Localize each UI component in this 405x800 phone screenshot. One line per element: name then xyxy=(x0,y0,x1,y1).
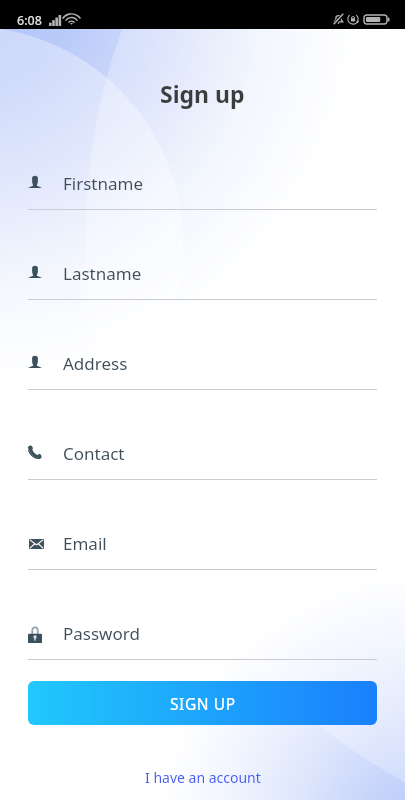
button[interactable]: Email xyxy=(28,524,377,570)
button[interactable]: Address xyxy=(28,344,377,390)
staticText: Firstname xyxy=(63,172,144,195)
staticText: Address xyxy=(63,352,128,375)
button[interactable]: Contact xyxy=(28,434,377,480)
button[interactable]: I have an account xyxy=(135,764,271,791)
button[interactable]: SIGN UP xyxy=(28,681,377,725)
staticText: Password xyxy=(63,622,140,645)
button[interactable]: Lastname xyxy=(28,254,377,300)
staticText: Lastname xyxy=(63,262,142,285)
staticText: Sign up xyxy=(160,78,245,109)
staticText: 6:08 xyxy=(17,12,42,29)
staticText: Email xyxy=(63,532,107,555)
button[interactable]: Firstname xyxy=(28,164,377,210)
button[interactable]: Password xyxy=(28,614,377,660)
other: Silent mode xyxy=(333,13,344,25)
staticText: SIGN UP xyxy=(170,693,236,714)
other: Auto-rotate locked xyxy=(347,13,359,25)
staticText: Contact xyxy=(63,442,125,465)
